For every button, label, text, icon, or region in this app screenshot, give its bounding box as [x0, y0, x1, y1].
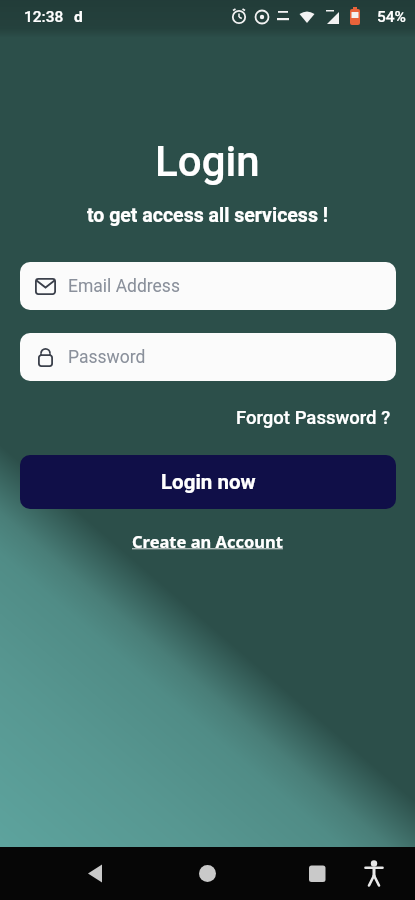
staticText: Login now: [161, 470, 256, 494]
staticText: to get access all servicess !: [87, 204, 329, 227]
staticText: Forgot Password ?: [236, 407, 391, 429]
staticText: 12:38: [24, 8, 64, 26]
staticText: Password: [68, 347, 146, 368]
staticText: Email Address: [68, 276, 180, 297]
staticText: Create an Account: [132, 530, 283, 552]
staticText: 54%: [377, 8, 407, 26]
staticText: Login: [155, 137, 260, 186]
staticText: d: [74, 8, 83, 26]
